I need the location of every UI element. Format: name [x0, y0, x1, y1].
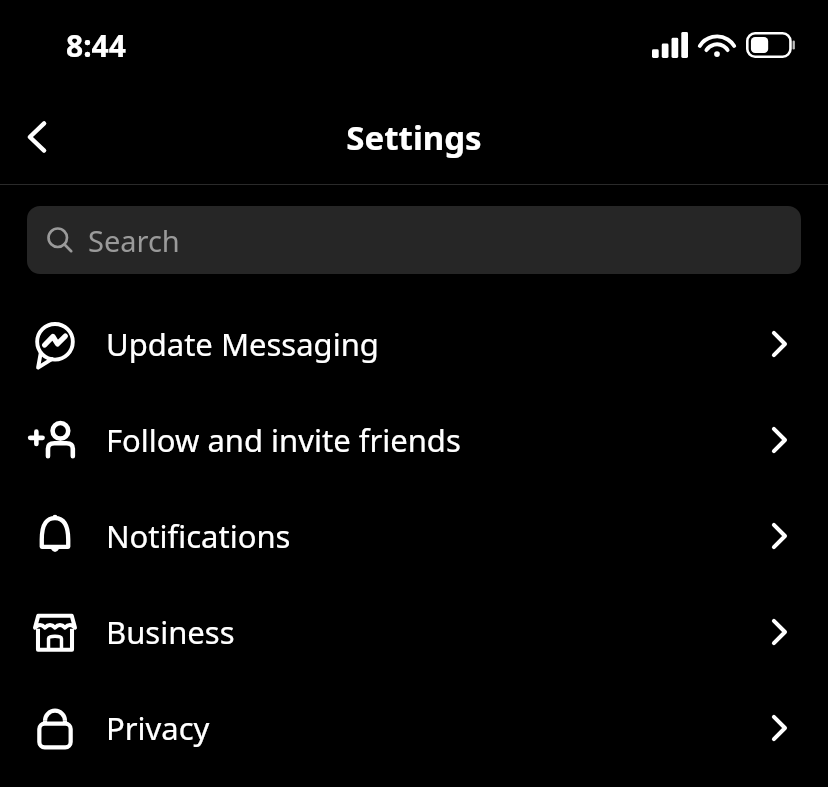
button[interactable]: Search: [27, 206, 801, 274]
staticText: Update Messaging: [106, 323, 749, 365]
button[interactable]: Privacy: [0, 680, 828, 776]
button[interactable]: Back: [0, 99, 76, 175]
staticText: Search: [88, 221, 180, 260]
staticText: 8:44: [66, 25, 126, 66]
staticText: Privacy: [106, 707, 749, 749]
button[interactable]: Follow and invite friends: [0, 392, 828, 488]
button[interactable]: Update Messaging: [0, 296, 828, 392]
button[interactable]: Business: [0, 584, 828, 680]
staticText: Business: [106, 611, 749, 653]
button[interactable]: Notifications: [0, 488, 828, 584]
staticText: Notifications: [106, 515, 749, 557]
staticText: Settings: [346, 115, 482, 160]
staticText: Follow and invite friends: [106, 419, 749, 461]
